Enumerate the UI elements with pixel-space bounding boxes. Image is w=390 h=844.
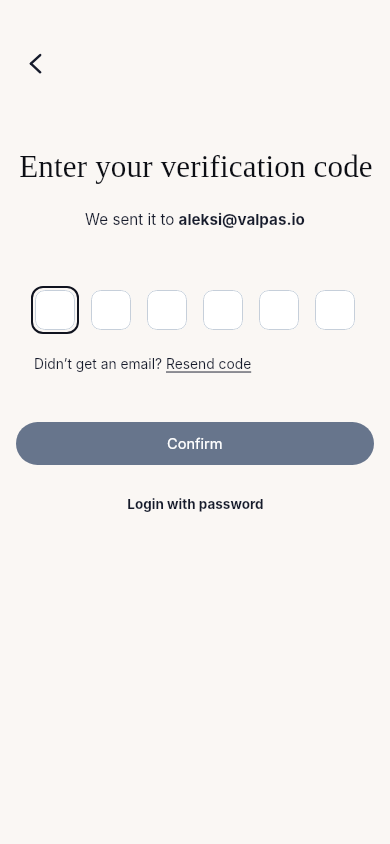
button[interactable]: Confirm: [16, 422, 374, 465]
staticText: Resend code: [166, 356, 252, 373]
staticText: Didn’t get an email?: [34, 356, 166, 373]
staticText: Login with password: [127, 496, 264, 512]
button[interactable]: Login with password: [127, 496, 264, 512]
button[interactable]: Back: [13, 41, 57, 85]
button[interactable]: [91, 290, 131, 330]
button[interactable]: [315, 290, 355, 330]
button[interactable]: [35, 290, 75, 330]
staticText: Confirm: [167, 435, 223, 453]
button[interactable]: [147, 290, 187, 330]
staticText: We sent it to aleksi@valpas.io: [0, 210, 390, 228]
button[interactable]: [259, 290, 299, 330]
button[interactable]: Resend code: [166, 356, 252, 373]
staticText: Enter your verification code: [1, 149, 390, 183]
button[interactable]: [203, 290, 243, 330]
